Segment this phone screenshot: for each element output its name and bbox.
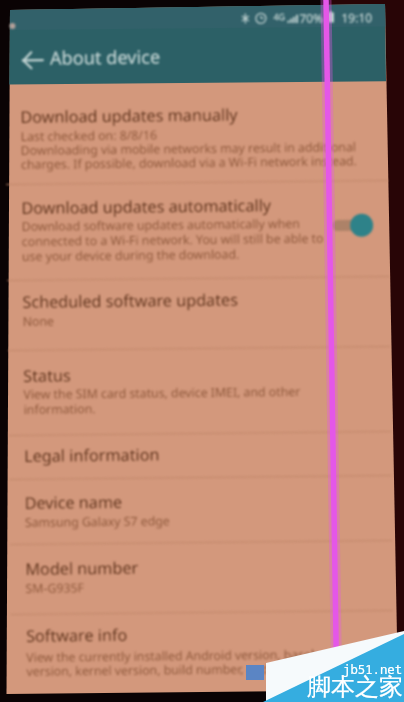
- staticText: View the SIM card status, device IMEI, a…: [23, 383, 301, 403]
- staticText: Device name: [24, 491, 123, 514]
- staticText: Software info: [26, 624, 128, 647]
- staticText: 脚本之家: [307, 672, 403, 702]
- button[interactable]: Device name: [24, 491, 123, 514]
- staticText: Status: [23, 364, 71, 387]
- button[interactable]: Download updates automatically toggle: [332, 211, 377, 240]
- staticText: charges. If possible, download via a Wi-…: [21, 152, 357, 173]
- staticText: SM-G935F: [25, 579, 85, 597]
- button[interactable]: Status: [23, 364, 71, 387]
- staticText: Model number: [25, 557, 138, 580]
- button[interactable]: Download updates automatically: [21, 194, 271, 219]
- staticText: None: [23, 313, 55, 330]
- staticText: Scheduled software updates: [22, 289, 238, 313]
- button[interactable]: Back: [17, 45, 47, 75]
- staticText: View the currently installed Android ver…: [26, 645, 341, 666]
- staticText: About device: [50, 44, 161, 71]
- staticText: jb51.net: [343, 661, 403, 678]
- button[interactable]: Software info: [26, 624, 128, 647]
- staticText: 70%: [299, 10, 323, 26]
- staticText: 19:10: [341, 9, 372, 25]
- staticText: Legal information: [24, 443, 160, 467]
- button[interactable]: Download updates manually: [20, 104, 238, 128]
- staticText: 4G: [273, 10, 285, 22]
- staticText: Download updates automatically: [21, 194, 271, 219]
- staticText: Last checked on: 8/8/16: [21, 126, 158, 145]
- button[interactable]: Model number: [25, 557, 138, 580]
- staticText: connected to a Wi-Fi network. You will s…: [22, 230, 324, 250]
- button[interactable]: Legal information: [24, 443, 160, 467]
- staticText: version, kernel version, build number, a…: [26, 660, 270, 680]
- staticText: Downloading via mobile networks may resu…: [21, 138, 357, 159]
- staticText: Download software updates automatically …: [21, 215, 301, 235]
- staticText: use your device during the download.: [22, 246, 240, 265]
- staticText: information.: [23, 400, 96, 418]
- button[interactable]: Scheduled software updates: [22, 289, 238, 313]
- staticText: Download updates manually: [20, 104, 238, 128]
- staticText: Samsung Galaxy S7 edge: [25, 512, 170, 531]
